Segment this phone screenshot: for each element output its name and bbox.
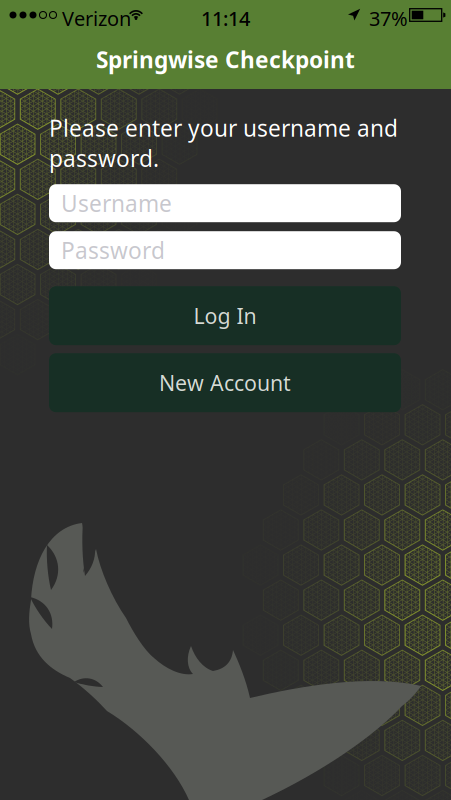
staticText: Please enter your username and password. <box>49 113 398 173</box>
staticText: Springwise Checkpoint <box>96 44 355 74</box>
staticText: Username <box>61 188 172 218</box>
button[interactable]: Log In <box>49 286 401 345</box>
staticText: New Account <box>159 368 291 397</box>
staticText: Log In <box>193 301 256 330</box>
button[interactable]: Username <box>49 184 401 222</box>
staticText: Password <box>61 235 165 265</box>
staticText: 37% <box>369 5 408 32</box>
button[interactable]: Password <box>49 231 401 269</box>
staticText: 11:14 <box>201 5 250 32</box>
button[interactable]: New Account <box>49 353 401 412</box>
staticText: Verizon <box>62 5 131 32</box>
